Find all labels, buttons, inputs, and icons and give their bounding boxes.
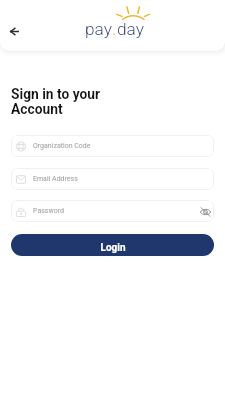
- staticText: .: [112, 19, 117, 39]
- button[interactable]: Password: [11, 200, 214, 222]
- staticText: day: [117, 19, 144, 39]
- staticText: Password: [33, 207, 64, 215]
- button[interactable]: Organization Code: [11, 135, 214, 157]
- staticText: Email Address: [33, 175, 78, 183]
- staticText: Sign in to your Account: [11, 86, 101, 117]
- button[interactable]: Email Address: [11, 168, 214, 190]
- button[interactable]: Back: [0, 18, 28, 44]
- staticText: Organization Code: [33, 142, 91, 150]
- staticText: Login: [100, 242, 126, 254]
- staticText: pay: [85, 19, 112, 39]
- button[interactable]: Login: [11, 234, 214, 256]
- button[interactable]: Show password: [198, 204, 213, 219]
